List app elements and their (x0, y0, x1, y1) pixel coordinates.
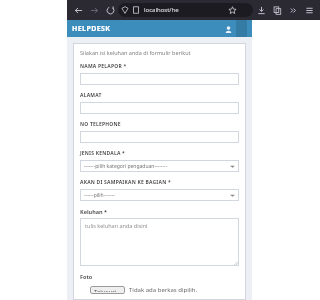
button[interactable]: Reload (102, 2, 118, 18)
staticText: localhost/he (144, 6, 179, 14)
staticText: Foto (80, 273, 93, 280)
staticText: Keluhan * (80, 208, 108, 215)
staticText: Telusuri… (94, 288, 121, 292)
staticText: tulis keluhan anda disini (85, 222, 148, 229)
button[interactable]: Forward (86, 2, 102, 18)
staticText: AKAN DI SAMPAIKAN KE BAGIAN * (80, 179, 171, 186)
staticText: NO TELEPHONE (80, 121, 121, 128)
button[interactable]: Menu (301, 2, 317, 18)
button[interactable]: tulis keluhan anda disini (80, 218, 239, 266)
button[interactable]: User (222, 23, 234, 35)
button[interactable]: -------pilih kategori pengaduan-------- (80, 160, 239, 172)
button[interactable] (80, 131, 239, 143)
button[interactable]: Downloads (253, 2, 269, 18)
staticText: NAMA PELAPOR * (80, 63, 127, 70)
staticText: JENIS KENDALA * (80, 150, 125, 157)
button[interactable] (80, 73, 239, 85)
button[interactable]: localhost/he (118, 3, 253, 17)
staticText: Silakan isi keluhan anda di formulir ber… (80, 49, 191, 56)
button[interactable] (80, 102, 239, 114)
staticText: Tidak ada berkas dipilih. (129, 286, 198, 294)
button[interactable]: More (285, 2, 301, 18)
button[interactable]: Back (70, 2, 86, 18)
button[interactable]: ------pilih------- (80, 189, 239, 201)
staticText: ALAMAT (80, 92, 102, 99)
button[interactable]: Copy (269, 2, 285, 18)
staticText: -------pilih kategori pengaduan-------- (84, 163, 230, 170)
button[interactable]: Telusuri… (90, 286, 125, 294)
staticText: HELPDESK (72, 24, 111, 34)
staticText: ------pilih------- (84, 192, 230, 199)
